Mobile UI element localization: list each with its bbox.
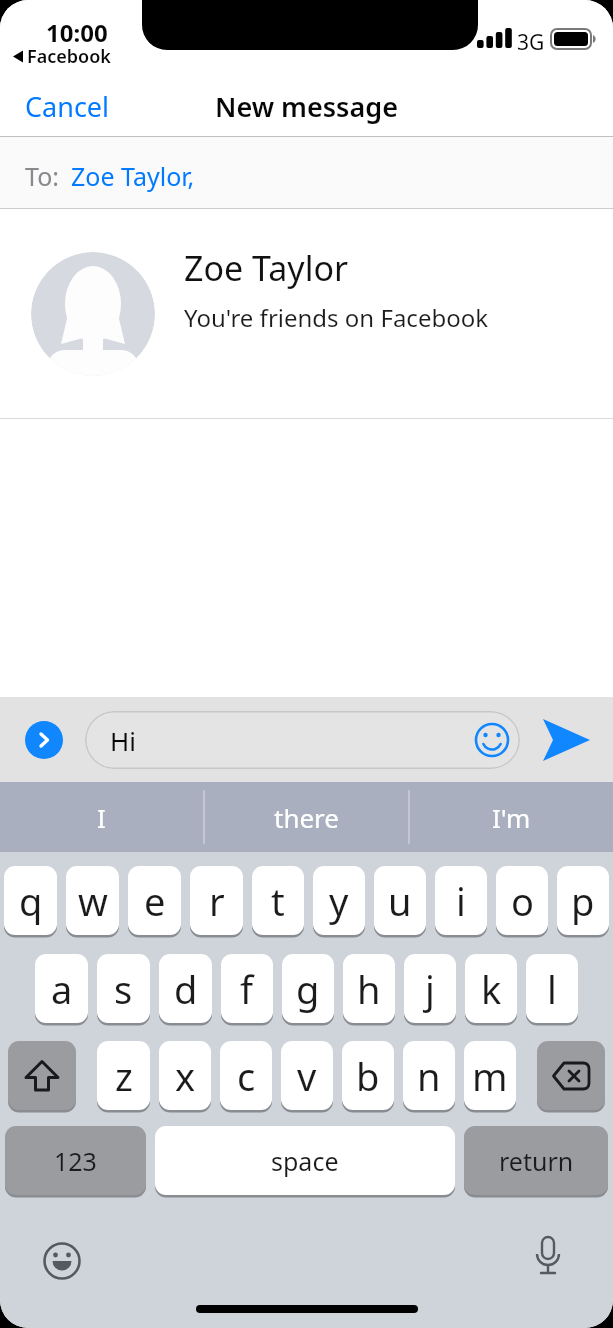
staticText: Cancel bbox=[25, 88, 110, 125]
staticText: Zoe Taylor bbox=[184, 245, 349, 291]
button[interactable]: p bbox=[557, 866, 609, 935]
button[interactable]: Hi bbox=[85, 711, 520, 769]
staticText: m bbox=[472, 1050, 508, 1102]
staticText: n bbox=[417, 1050, 441, 1102]
button[interactable] bbox=[8, 1041, 76, 1110]
staticText: 3G bbox=[517, 28, 545, 57]
staticText: d bbox=[174, 963, 198, 1015]
button[interactable]: r bbox=[190, 866, 243, 935]
button[interactable]: j bbox=[404, 954, 456, 1023]
button[interactable]: h bbox=[343, 954, 395, 1023]
button[interactable]: c bbox=[220, 1041, 272, 1110]
button[interactable]: space bbox=[155, 1126, 455, 1195]
staticText: I'm bbox=[492, 800, 531, 835]
button[interactable]: b bbox=[342, 1041, 394, 1110]
button[interactable]: g bbox=[282, 954, 334, 1023]
button[interactable]: u bbox=[374, 866, 426, 935]
button[interactable]: x bbox=[159, 1041, 211, 1110]
staticText: b bbox=[356, 1050, 380, 1102]
button[interactable]: Cancel bbox=[25, 88, 110, 125]
staticText: g bbox=[296, 963, 320, 1015]
button[interactable]: there bbox=[205, 782, 408, 852]
staticText: v bbox=[297, 1050, 317, 1102]
staticText: l bbox=[547, 963, 557, 1015]
staticText: o bbox=[511, 875, 534, 927]
staticText: r bbox=[209, 875, 225, 927]
button[interactable]: m bbox=[464, 1041, 516, 1110]
staticText: e bbox=[144, 875, 166, 927]
staticText: x bbox=[175, 1050, 196, 1102]
staticText: u bbox=[388, 875, 412, 927]
staticText: Zoe Taylor, bbox=[71, 159, 195, 193]
staticText: Hi bbox=[110, 723, 136, 758]
button[interactable] bbox=[543, 717, 590, 763]
button[interactable]: v bbox=[281, 1041, 333, 1110]
button[interactable]: d bbox=[159, 954, 212, 1023]
staticText: j bbox=[425, 963, 435, 1015]
button[interactable]: w bbox=[66, 866, 119, 935]
staticText: t bbox=[271, 875, 285, 927]
button[interactable]: f bbox=[221, 954, 273, 1023]
staticText: y bbox=[329, 875, 349, 927]
staticText: there bbox=[274, 800, 340, 835]
staticText: Facebook bbox=[27, 44, 111, 69]
staticText: p bbox=[571, 875, 595, 927]
staticText: I bbox=[97, 800, 106, 835]
staticText: c bbox=[237, 1050, 256, 1102]
button[interactable]: q bbox=[4, 866, 57, 935]
button[interactable]: I'm bbox=[410, 782, 613, 852]
button[interactable]: a bbox=[35, 954, 88, 1023]
staticText: z bbox=[115, 1050, 133, 1102]
button[interactable] bbox=[537, 1041, 605, 1110]
button[interactable]: 123 bbox=[5, 1126, 146, 1195]
button[interactable] bbox=[25, 721, 63, 759]
button[interactable] bbox=[530, 1235, 566, 1283]
staticText: k bbox=[481, 963, 502, 1015]
button[interactable]: To: bbox=[0, 137, 613, 208]
staticText: h bbox=[357, 963, 381, 1015]
button[interactable]: e bbox=[128, 866, 181, 935]
staticText: q bbox=[19, 875, 43, 927]
button[interactable]: y bbox=[313, 866, 365, 935]
button[interactable]: i bbox=[435, 866, 487, 935]
staticText: f bbox=[240, 963, 254, 1015]
staticText: space bbox=[271, 1144, 339, 1178]
staticText: a bbox=[51, 963, 73, 1015]
staticText: w bbox=[78, 875, 108, 927]
staticText: 123 bbox=[54, 1144, 97, 1178]
button[interactable]: k bbox=[465, 954, 517, 1023]
staticText: New message bbox=[215, 88, 398, 125]
staticText: To: bbox=[25, 159, 59, 193]
staticText: i bbox=[456, 875, 466, 927]
staticText: You're friends on Facebook bbox=[184, 301, 489, 334]
staticText: s bbox=[114, 963, 133, 1015]
button[interactable]: return bbox=[464, 1126, 608, 1195]
button[interactable]: l bbox=[526, 954, 578, 1023]
button[interactable]: s bbox=[97, 954, 150, 1023]
button[interactable]: n bbox=[403, 1041, 455, 1110]
button[interactable] bbox=[42, 1241, 82, 1281]
button[interactable]: I bbox=[0, 782, 203, 852]
button[interactable]: o bbox=[496, 866, 548, 935]
staticText: return bbox=[499, 1144, 574, 1178]
button[interactable]: Zoe Taylor bbox=[0, 209, 613, 418]
staticText: 10:00 bbox=[46, 16, 108, 49]
button[interactable]: z bbox=[97, 1041, 150, 1110]
button[interactable]: t bbox=[252, 866, 304, 935]
